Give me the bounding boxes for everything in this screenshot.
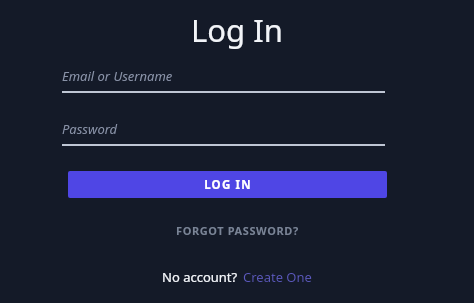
button[interactable]: Password — [62, 120, 385, 146]
staticText: Create One — [243, 268, 312, 286]
staticText: No account? — [162, 268, 238, 286]
button[interactable]: Email or Username — [62, 67, 385, 93]
staticText: FORGOT PASSWORD? — [176, 223, 299, 238]
staticText: Password — [62, 120, 118, 138]
staticText: LOG IN — [204, 177, 252, 193]
staticText: Log In — [191, 9, 283, 51]
button[interactable]: Create One — [243, 268, 312, 286]
staticText: Email or Username — [62, 67, 173, 85]
button[interactable]: FORGOT PASSWORD? — [170, 220, 305, 241]
button[interactable]: LOG IN — [68, 171, 387, 198]
